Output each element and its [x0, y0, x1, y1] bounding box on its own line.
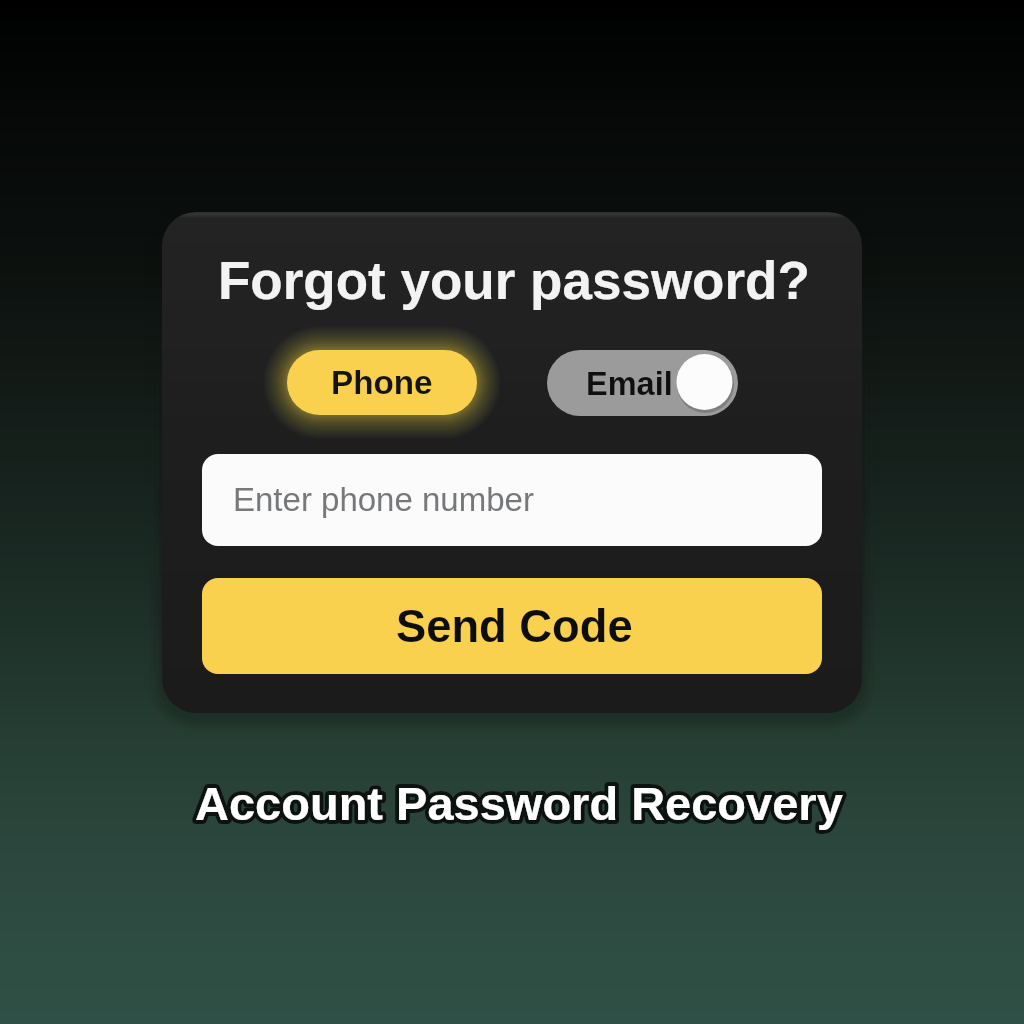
button[interactable]: Switch to email recovery [547, 350, 738, 416]
staticText: Forgot your password? [218, 251, 810, 310]
staticText: Enter phone number [233, 481, 534, 518]
staticText: Send Code [396, 601, 633, 652]
staticText: Account Password Recovery [195, 777, 843, 830]
staticText: Phone [331, 364, 433, 401]
button[interactable]: Phone [287, 350, 477, 415]
staticText: Email [586, 366, 673, 402]
button[interactable]: Enter phone number [202, 454, 822, 546]
button[interactable]: Send Code [202, 578, 822, 674]
